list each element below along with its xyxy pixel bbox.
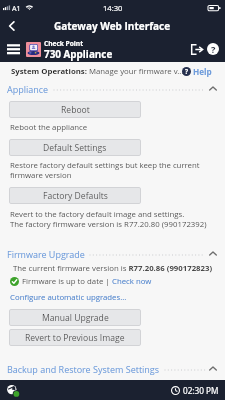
button[interactable]: Reboot	[9, 101, 141, 118]
button[interactable]: 02:30 PM	[171, 385, 219, 396]
button[interactable]: Check now	[112, 276, 152, 287]
staticText: Firmware Upgrade	[7, 248, 85, 260]
button[interactable]: Manual Upgrade	[9, 309, 141, 326]
staticText: Revert to the factory default image and …	[10, 209, 225, 229]
button[interactable]: Firmware Upgrade	[0, 248, 225, 260]
staticText: System Operations: Manage your firmware …	[11, 66, 184, 77]
staticText: 02:30 PM	[183, 385, 219, 396]
button[interactable]: Backup and Restore System Settings	[0, 363, 225, 375]
staticText: ?	[211, 43, 216, 55]
staticText: Backup and Restore System Settings	[7, 363, 160, 375]
staticText: 14:30	[103, 3, 123, 13]
staticText: Check Point	[44, 39, 84, 48]
staticText: Gateway Web Interface	[54, 19, 171, 33]
staticText: Reboot the appliance	[10, 122, 88, 133]
button[interactable]: Factory Defaults	[9, 187, 141, 204]
button[interactable]: Help	[203, 36, 223, 62]
staticText: Factory Defaults	[43, 190, 108, 202]
staticText: Manual Upgrade	[42, 312, 109, 324]
button[interactable]: Appliance	[0, 83, 225, 95]
button[interactable]: Configure automatic upgrades...	[10, 292, 127, 303]
staticText: Firmware is up to date |	[22, 276, 112, 287]
button[interactable]: ?	[182, 66, 212, 77]
button[interactable]: Revert to Previous Image	[9, 329, 141, 346]
button[interactable]: Default Settings	[9, 139, 141, 156]
staticText: The current firmware version is R77.20.8…	[13, 263, 213, 274]
staticText: Revert to Previous Image	[25, 332, 125, 344]
button[interactable]: Connection status	[4, 380, 22, 400]
button[interactable]: Log out	[187, 36, 207, 62]
button[interactable]: Back	[0, 15, 24, 36]
staticText: Help	[193, 66, 212, 77]
staticText: Reboot	[61, 104, 90, 116]
staticText: ?	[185, 67, 189, 76]
button[interactable]: Menu	[2, 36, 24, 62]
staticText: A1	[12, 3, 21, 13]
staticText: 730 Appliance	[44, 47, 113, 60]
staticText: Default Settings	[43, 142, 107, 154]
staticText: Restore factory default settings but kee…	[10, 160, 210, 180]
staticText: Appliance	[7, 83, 49, 95]
